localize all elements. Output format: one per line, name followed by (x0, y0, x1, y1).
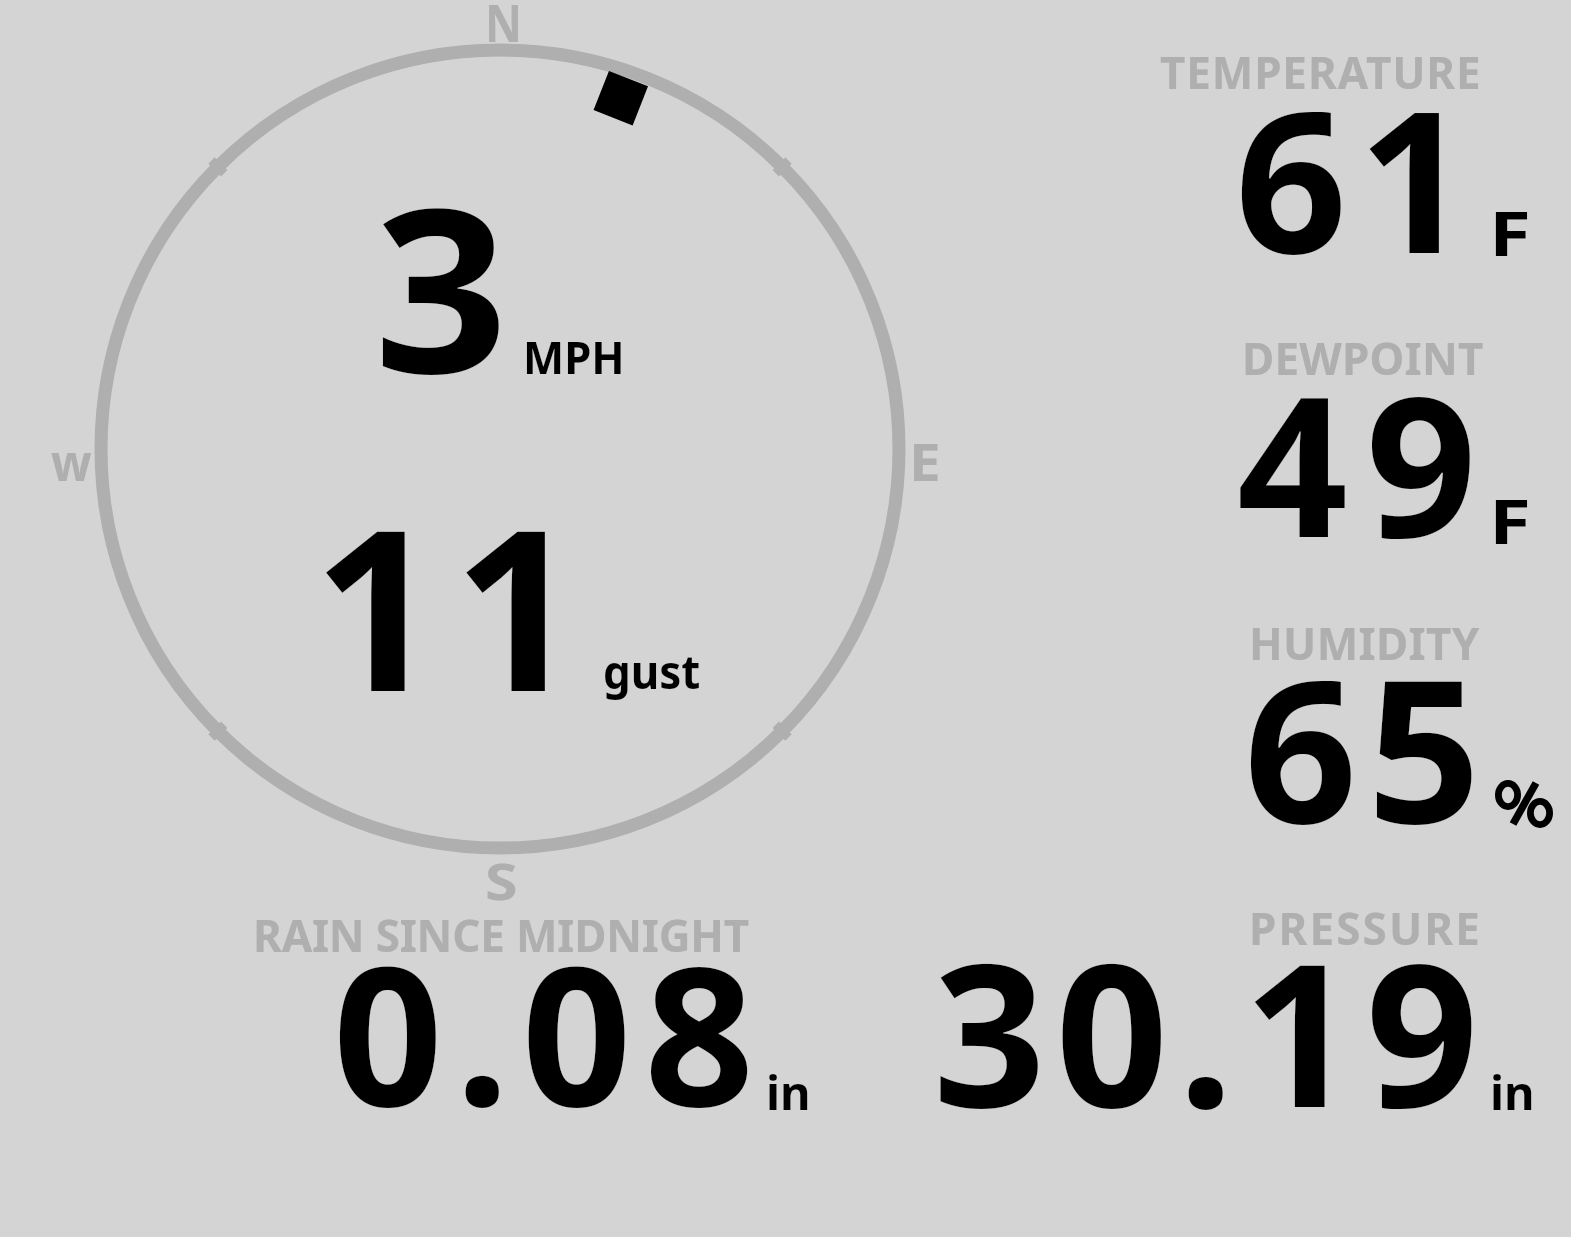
button[interactable]: Dewpoint 49 degrees Fahrenheit (1140, 325, 1560, 555)
staticText: 11 (313, 454, 594, 756)
staticText: DEWPOINT (1242, 328, 1484, 388)
button[interactable]: Rain since midnight 0.08 inches (240, 900, 820, 1125)
staticText: MPH (523, 326, 625, 387)
staticText: 49 (1237, 330, 1495, 594)
button[interactable]: Pressure 30.19 inches (925, 895, 1545, 1125)
button[interactable]: Wind speed and direction (95, 45, 905, 855)
staticText: S (485, 845, 519, 914)
staticText: 3 (374, 131, 520, 439)
staticText: in (766, 1060, 811, 1124)
staticText: N (485, 0, 523, 57)
button[interactable]: Humidity 65 percent (1140, 610, 1560, 840)
staticText: F (1489, 479, 1531, 562)
staticText: E (909, 425, 942, 496)
staticText: 61 (1235, 43, 1481, 310)
staticText: TEMPERATURE (1160, 42, 1482, 102)
staticText: gust (603, 640, 701, 703)
staticText: 30.19 (933, 896, 1489, 1164)
staticText: 0.08 (333, 901, 767, 1163)
staticText: HUMIDITY (1249, 613, 1480, 673)
button[interactable]: Temperature 61 degrees Fahrenheit (1140, 40, 1560, 270)
staticText: PRESSURE (1249, 898, 1482, 958)
staticText: F (1489, 191, 1531, 274)
staticText: 65 (1244, 611, 1491, 881)
staticText: in (1490, 1060, 1535, 1124)
staticText: RAIN SINCE MIDNIGHT (253, 905, 749, 965)
staticText: w (51, 426, 92, 495)
